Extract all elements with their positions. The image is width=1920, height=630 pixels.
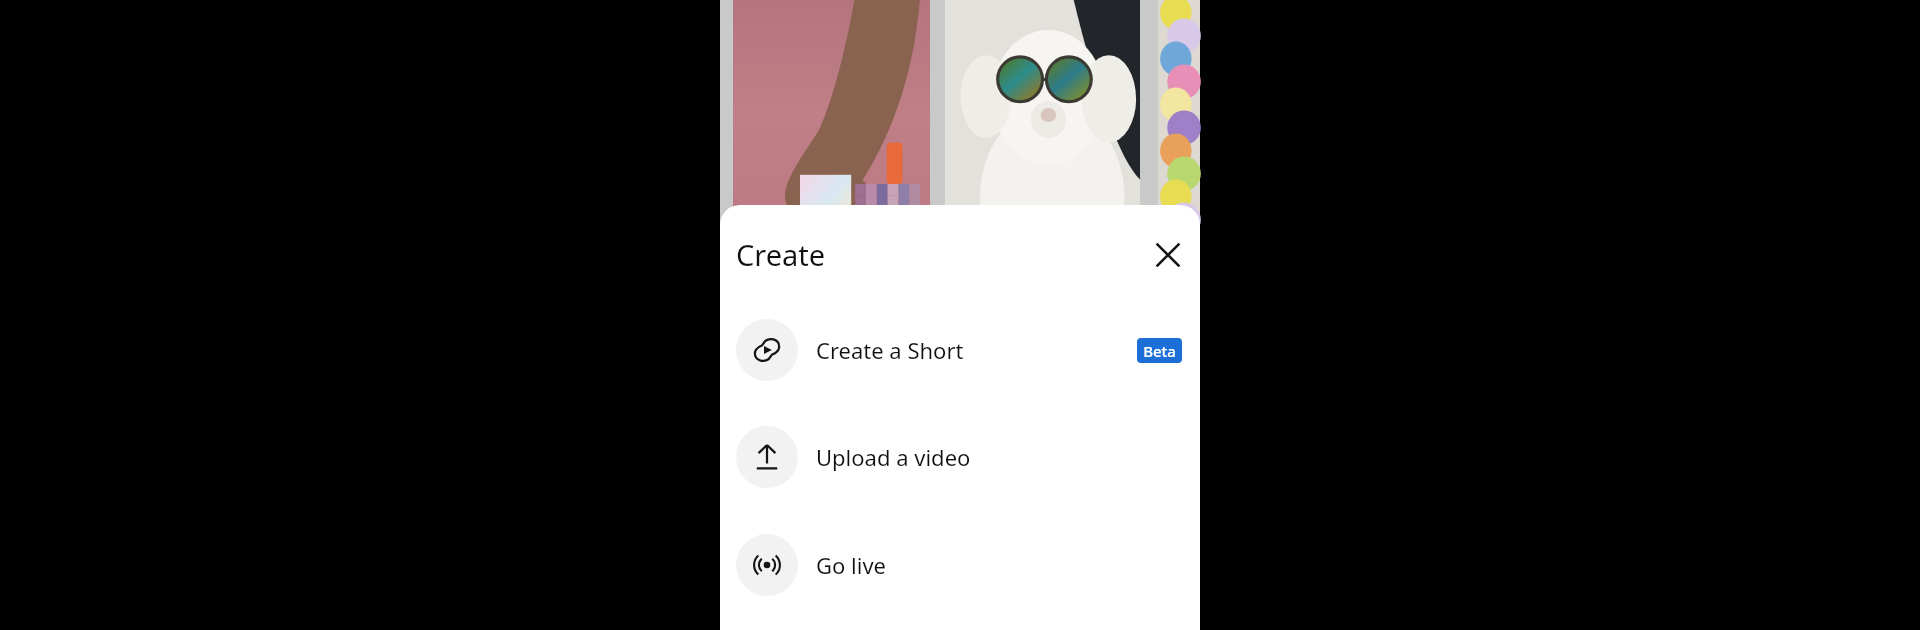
staticText: Beta [1143, 341, 1176, 361]
button[interactable]: Go live [720, 527, 1200, 603]
button[interactable]: Close [1142, 229, 1194, 281]
staticText: Create [736, 235, 826, 274]
staticText: Create a Short [816, 335, 964, 365]
button[interactable]: Create a Short [720, 312, 1200, 388]
staticText: Upload a video [816, 442, 971, 472]
button[interactable]: Upload a video [720, 419, 1200, 495]
staticText: Go live [816, 550, 886, 580]
